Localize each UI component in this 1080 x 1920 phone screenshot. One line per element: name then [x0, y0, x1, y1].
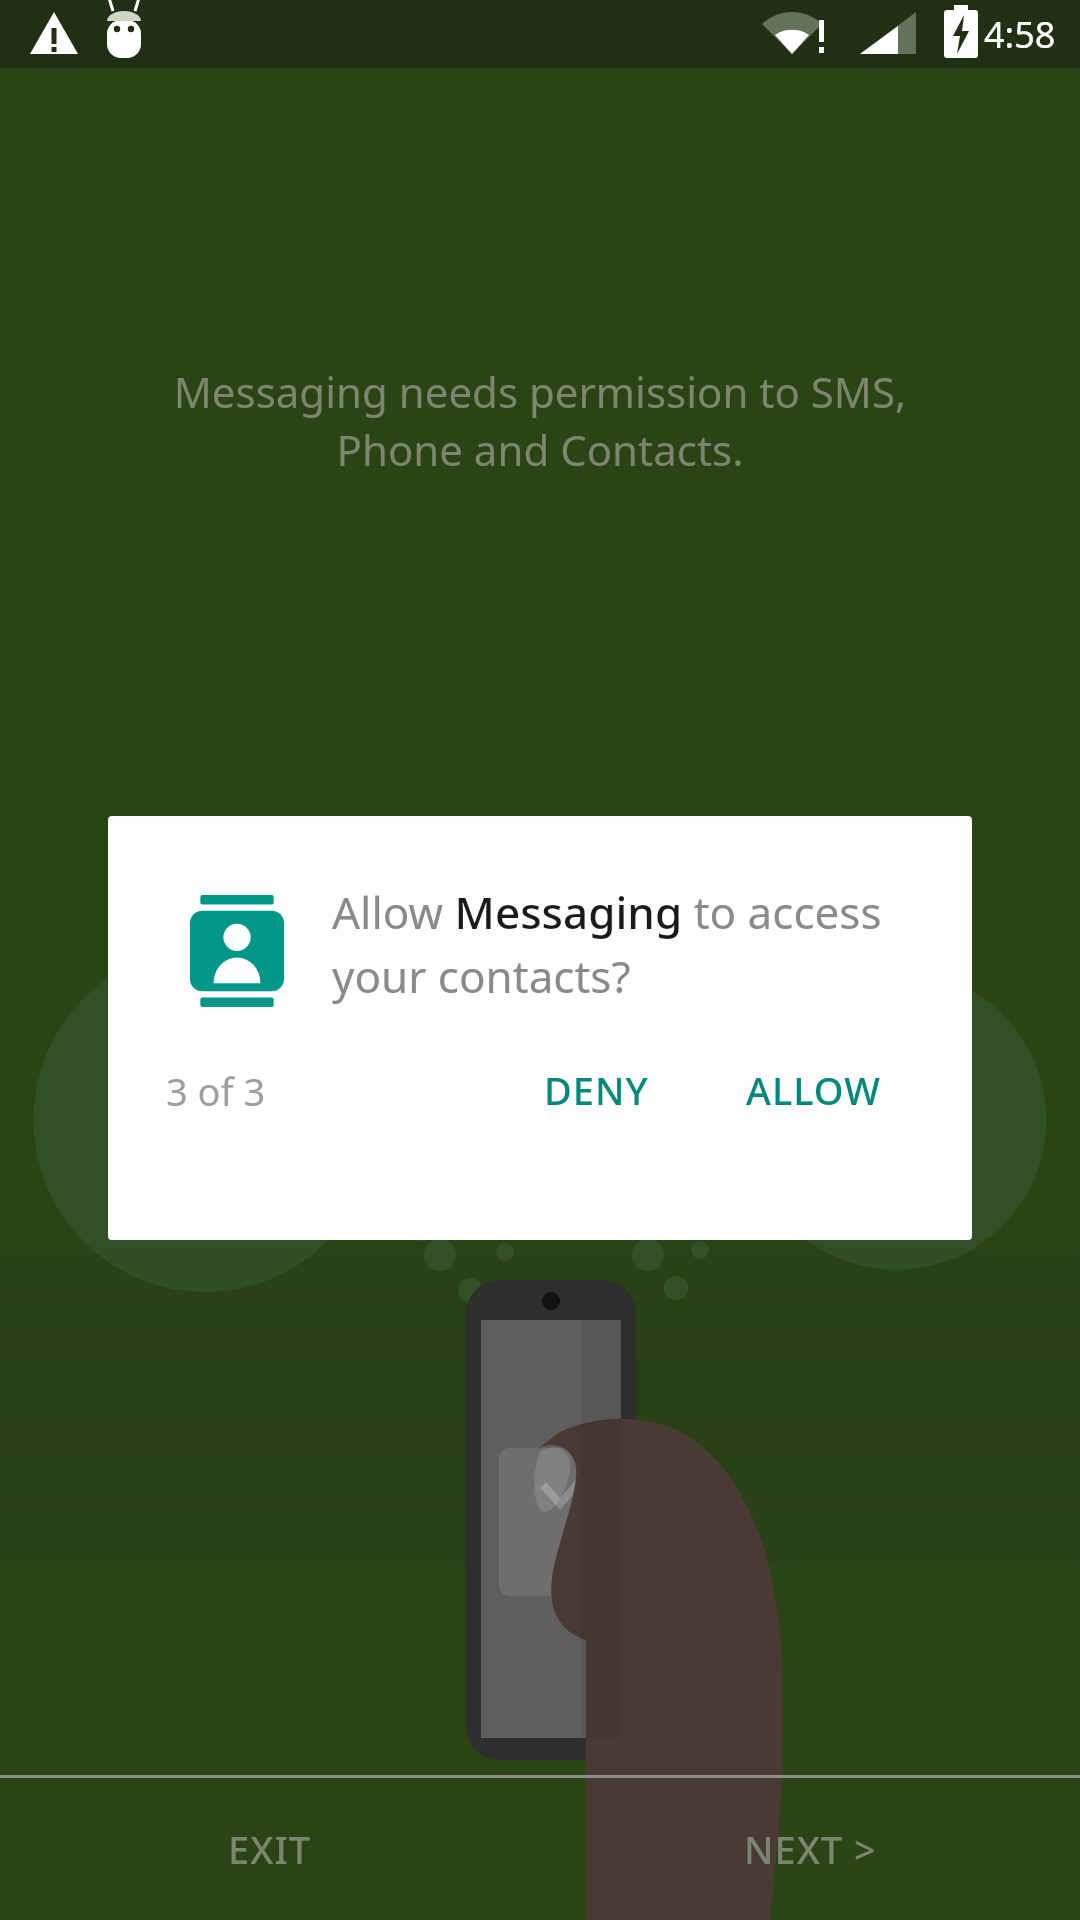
staticText: NEXT >: [744, 1823, 877, 1875]
staticText: ALLOW: [746, 1064, 881, 1116]
staticText: 4:58: [984, 10, 1056, 59]
staticText: 3 of 3: [166, 1065, 266, 1117]
staticText: EXIT: [228, 1823, 312, 1875]
staticText: Allow Messaging to access your contacts?: [332, 882, 892, 1006]
button[interactable]: EXIT: [0, 1778, 540, 1920]
staticText: Messaging needs permission to SMS, Phone…: [40, 363, 1040, 478]
button[interactable]: ALLOW: [710, 1044, 917, 1136]
button[interactable]: DENY: [508, 1044, 685, 1136]
button[interactable]: NEXT >: [540, 1778, 1080, 1920]
staticText: DENY: [544, 1064, 649, 1116]
